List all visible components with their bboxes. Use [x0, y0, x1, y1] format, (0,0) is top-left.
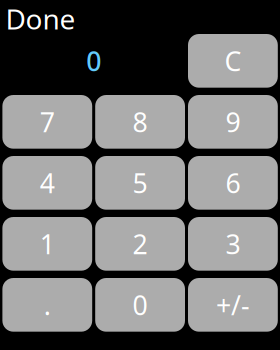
staticText: .: [44, 287, 51, 322]
staticText: 4: [40, 165, 55, 200]
staticText: 6: [225, 165, 240, 200]
button[interactable]: 0: [95, 278, 185, 332]
staticText: 7: [40, 104, 55, 139]
staticText: 9: [225, 104, 240, 139]
button[interactable]: 1: [2, 217, 92, 271]
staticText: 5: [133, 165, 148, 200]
button[interactable]: 4: [2, 156, 92, 210]
button[interactable]: 8: [95, 95, 185, 149]
staticText: +/-: [216, 287, 250, 322]
button[interactable]: 3: [188, 217, 278, 271]
staticText: 1: [40, 226, 55, 261]
button[interactable]: 5: [95, 156, 185, 210]
button[interactable]: +/-: [188, 278, 278, 332]
button[interactable]: Done: [2, 0, 134, 34]
staticText: 8: [133, 104, 148, 139]
staticText: 0: [133, 287, 148, 322]
staticText: 3: [225, 226, 240, 261]
staticText: 0: [86, 43, 101, 78]
staticText: Done: [5, 0, 75, 37]
button[interactable]: 9: [188, 95, 278, 149]
staticText: C: [224, 43, 241, 78]
button[interactable]: 7: [2, 95, 92, 149]
button[interactable]: .: [2, 278, 92, 332]
button[interactable]: 6: [188, 156, 278, 210]
button[interactable]: C: [188, 34, 278, 88]
button[interactable]: 2: [95, 217, 185, 271]
staticText: 2: [133, 226, 148, 261]
